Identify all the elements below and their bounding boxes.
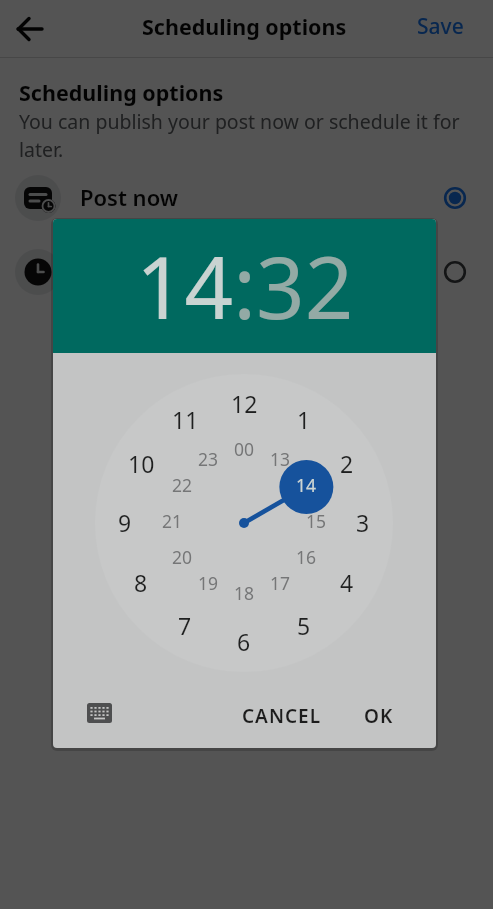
staticText: Scheduling options xyxy=(19,78,224,107)
staticText: 3 xyxy=(356,507,370,535)
staticText: 23 xyxy=(198,447,219,471)
button[interactable]: Post now xyxy=(0,175,493,222)
button[interactable] xyxy=(87,703,112,723)
staticText: 14 xyxy=(296,473,317,497)
staticText: 11 xyxy=(172,404,199,432)
staticText: You can publish your post now or schedul… xyxy=(19,108,460,163)
staticText: 7 xyxy=(178,610,192,638)
staticText: 6 xyxy=(237,626,251,654)
button[interactable]: Schedule for later xyxy=(0,249,493,296)
staticText: 21 xyxy=(162,509,183,533)
staticText: 9 xyxy=(118,507,132,535)
staticText: 2 xyxy=(340,448,354,476)
staticText: 8 xyxy=(134,567,148,595)
staticText: 22 xyxy=(172,473,193,497)
staticText: 12 xyxy=(231,388,258,416)
staticText: 00 xyxy=(234,437,255,461)
button[interactable]: CANCEL xyxy=(227,695,337,737)
staticText: 19 xyxy=(198,571,219,595)
staticText: Schedule for later xyxy=(80,256,271,286)
button[interactable]: Save xyxy=(417,12,464,41)
button[interactable]: OK xyxy=(349,695,409,737)
staticText: Post now xyxy=(80,182,179,212)
staticText: 18 xyxy=(234,581,255,605)
button[interactable] xyxy=(10,9,50,49)
staticText: 17 xyxy=(270,571,291,595)
staticText: OK xyxy=(364,703,394,729)
staticText: CANCEL xyxy=(242,703,322,729)
staticText: 14:32 xyxy=(136,228,354,344)
staticText: 20 xyxy=(172,545,193,569)
staticText: 10 xyxy=(128,448,155,476)
staticText: 16 xyxy=(296,545,317,569)
staticText: Scheduling options xyxy=(142,12,347,41)
staticText: 13 xyxy=(270,447,291,471)
staticText: 1 xyxy=(297,404,311,432)
staticText: 15 xyxy=(306,509,327,533)
staticText: 5 xyxy=(297,610,311,638)
staticText: Save xyxy=(417,12,464,41)
staticText: 4 xyxy=(340,567,354,595)
